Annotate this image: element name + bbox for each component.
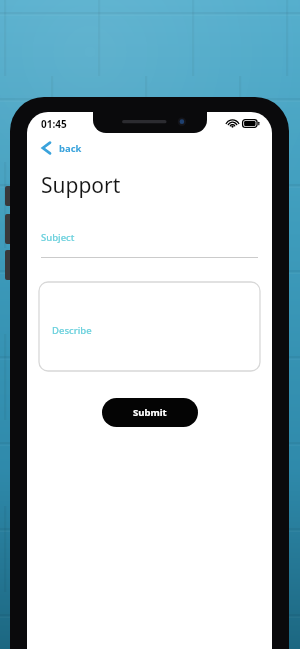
button[interactable]: Subject <box>41 231 258 258</box>
staticText: Subject <box>41 231 75 244</box>
staticText: 01:45 <box>41 117 67 131</box>
staticText: back <box>59 142 82 155</box>
button[interactable]: Back <box>37 138 86 158</box>
button[interactable]: Submit <box>102 398 198 427</box>
other: Back <box>41 141 52 155</box>
staticText: Submit <box>133 406 167 419</box>
staticText: Describe <box>52 324 92 337</box>
staticText: Support <box>41 171 121 200</box>
button[interactable]: Describe <box>39 282 260 371</box>
